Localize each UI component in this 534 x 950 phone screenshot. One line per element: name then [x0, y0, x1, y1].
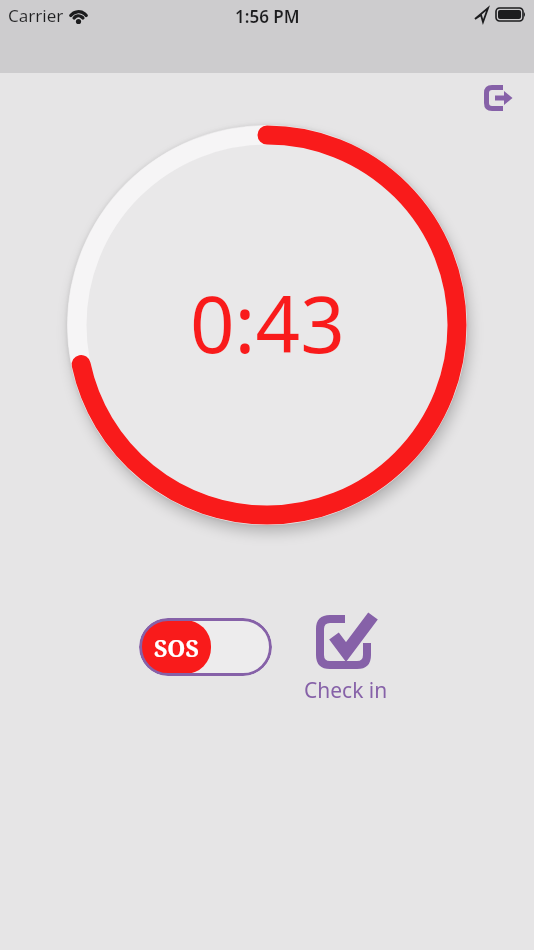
staticText: 1:56 PM: [235, 5, 300, 28]
staticText: Carrier: [8, 4, 64, 27]
staticText: 0:43: [190, 270, 345, 376]
staticText: Check in: [304, 676, 388, 705]
staticText: SOS: [154, 632, 199, 663]
button[interactable]: Check in: [286, 600, 406, 705]
button[interactable]: SOS: [139, 618, 272, 676]
button[interactable]: [474, 76, 522, 120]
